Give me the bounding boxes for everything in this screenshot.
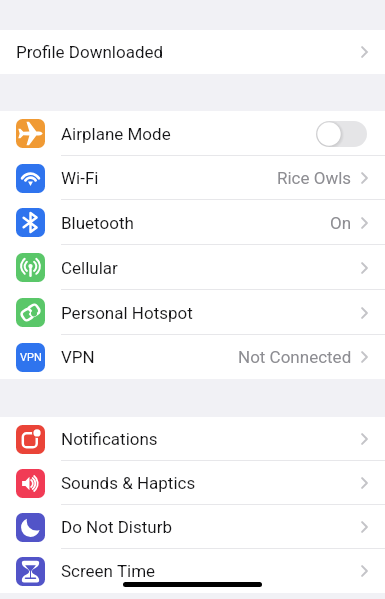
staticText: Cellular	[61, 258, 118, 278]
button[interactable]: Wi-Fi	[0, 156, 385, 200]
staticText: Bluetooth	[61, 213, 134, 233]
staticText: Wi-Fi	[61, 168, 99, 188]
staticText: Do Not Disturb	[61, 517, 172, 537]
button[interactable]: Personal Hotspot	[0, 290, 385, 335]
staticText: VPN	[20, 351, 42, 364]
staticText: Not Connected	[238, 347, 352, 367]
button[interactable]: Sounds & Haptics	[0, 461, 385, 505]
button[interactable]: VPN	[0, 335, 385, 379]
button[interactable]: Notifications	[0, 417, 385, 461]
staticText: Personal Hotspot	[61, 303, 193, 323]
button[interactable]: Profile Downloaded	[0, 30, 385, 74]
staticText: Rice Owls	[277, 168, 352, 188]
staticText: VPN	[61, 347, 95, 367]
button[interactable]: Airplane Mode	[0, 111, 385, 156]
button[interactable]: Do Not Disturb	[0, 505, 385, 549]
button[interactable]: Cellular	[0, 245, 385, 290]
staticText: Profile Downloaded	[16, 42, 164, 62]
staticText: Screen Time	[61, 561, 156, 581]
button[interactable]: Airplane Mode toggle	[316, 121, 367, 147]
button[interactable]: Bluetooth	[0, 200, 385, 245]
staticText: Sounds & Haptics	[61, 473, 196, 493]
staticText: Notifications	[61, 429, 158, 449]
button[interactable]: Screen Time	[0, 549, 385, 593]
staticText: Airplane Mode	[61, 124, 171, 144]
staticText: On	[330, 213, 352, 233]
